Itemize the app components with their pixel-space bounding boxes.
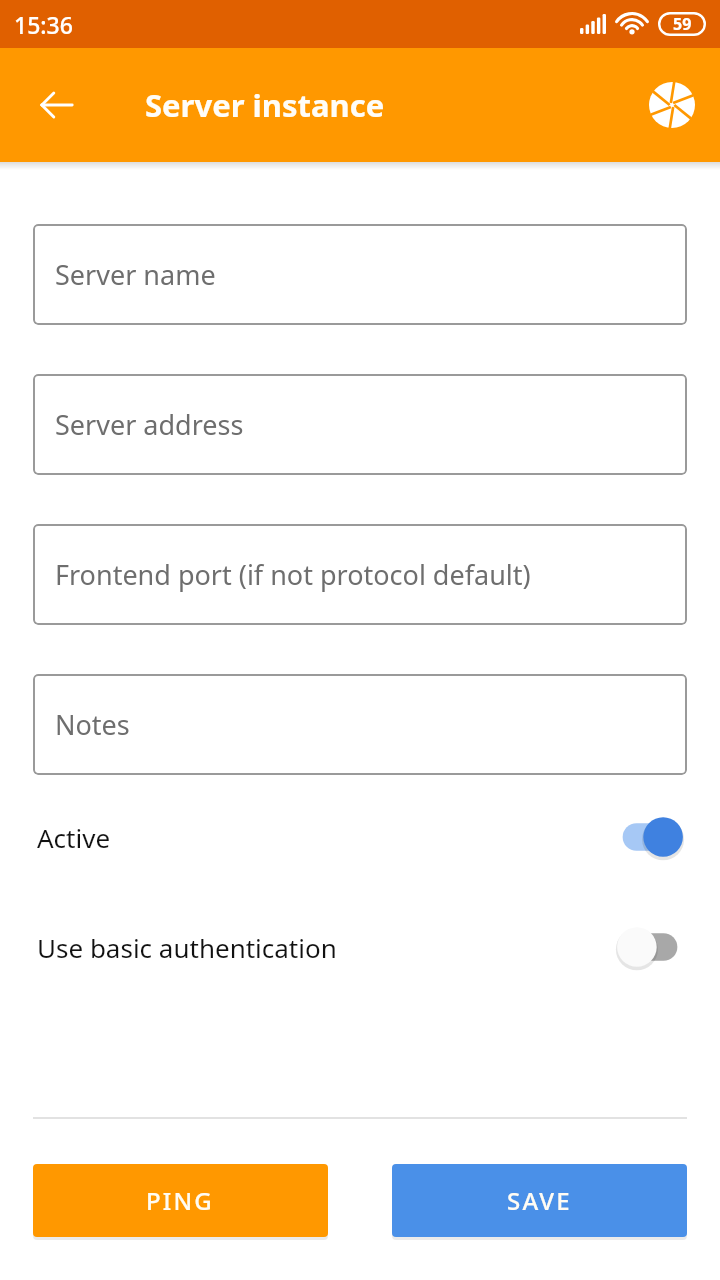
button[interactable]: Server name xyxy=(33,224,687,325)
button[interactable]: Server address xyxy=(33,374,687,475)
button[interactable]: Active xyxy=(0,809,720,865)
button[interactable]: Capture xyxy=(640,73,704,137)
staticText: Frontend port (if not protocol default) xyxy=(55,556,531,593)
staticText: Use basic authentication xyxy=(37,930,337,965)
staticText: Server address xyxy=(55,406,244,443)
button[interactable]: Frontend port (if not protocol default) xyxy=(33,524,687,625)
staticText: Notes xyxy=(55,706,130,743)
staticText: PING xyxy=(146,1184,215,1217)
button[interactable]: SAVE xyxy=(392,1164,687,1237)
staticText: SAVE xyxy=(507,1184,572,1217)
button[interactable]: Notes xyxy=(33,674,687,775)
staticText: Server name xyxy=(55,256,216,293)
staticText: Active xyxy=(37,820,111,855)
button[interactable]: Use basic authentication xyxy=(0,919,720,975)
staticText: Server instance xyxy=(145,84,385,126)
staticText: 15:36 xyxy=(14,9,73,40)
button[interactable]: PING xyxy=(33,1164,328,1237)
staticText: 59 xyxy=(673,13,692,35)
button[interactable]: Back xyxy=(23,71,91,139)
